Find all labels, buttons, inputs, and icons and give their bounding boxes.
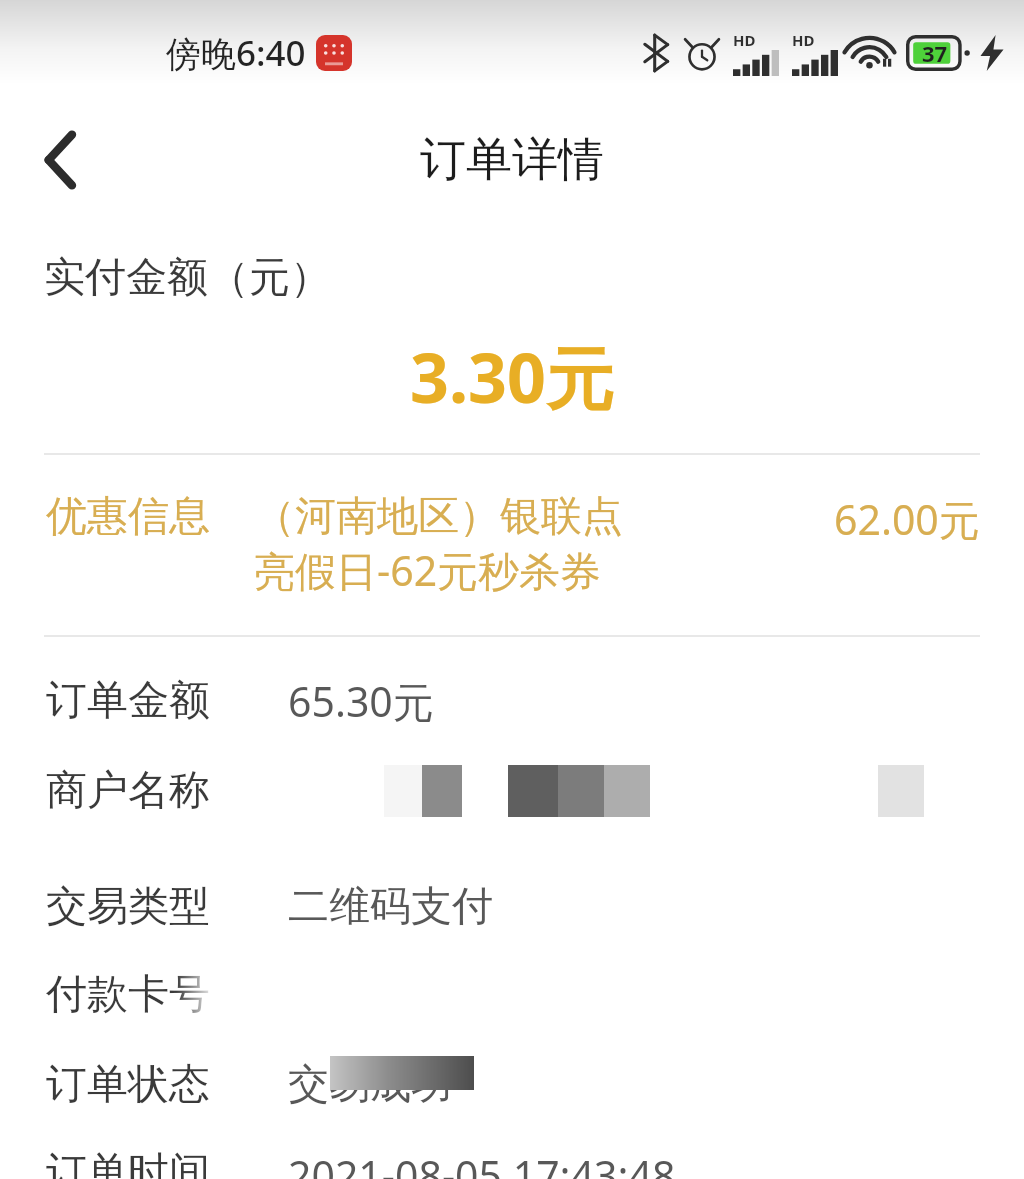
staticText: 付款卡号 xyxy=(46,969,210,1021)
staticText: HD xyxy=(733,30,756,50)
staticText: 订单详情 xyxy=(420,131,604,189)
staticText: 优惠信息 xyxy=(46,491,210,543)
staticText: 65.30元 xyxy=(288,673,434,729)
staticText: 交易成功 xyxy=(288,1059,452,1111)
staticText: 订单状态 xyxy=(46,1059,210,1111)
staticText: 傍晚6:40 xyxy=(166,29,306,77)
staticText: 订单时间 xyxy=(46,1147,210,1179)
staticText: 3.30元 xyxy=(410,330,614,423)
staticText: （河南地区）银联点 亮假日-62元秒杀券 xyxy=(254,491,623,599)
staticText: 2021-08-05 17:43:48 xyxy=(288,1147,676,1179)
staticText: 订单金额 xyxy=(46,675,210,727)
staticText: 交易类型 xyxy=(46,881,210,933)
staticText: 二维码支付 xyxy=(288,881,493,933)
button[interactable]: 优惠信息 xyxy=(0,455,1024,635)
staticText: 商户名称 xyxy=(46,765,210,817)
staticText: 实付金额（元） xyxy=(44,252,331,304)
staticText: 62.00元 xyxy=(834,491,980,547)
staticText: HD xyxy=(792,30,815,50)
staticText: 37 xyxy=(922,38,948,68)
button[interactable]: 返回 xyxy=(20,120,100,200)
